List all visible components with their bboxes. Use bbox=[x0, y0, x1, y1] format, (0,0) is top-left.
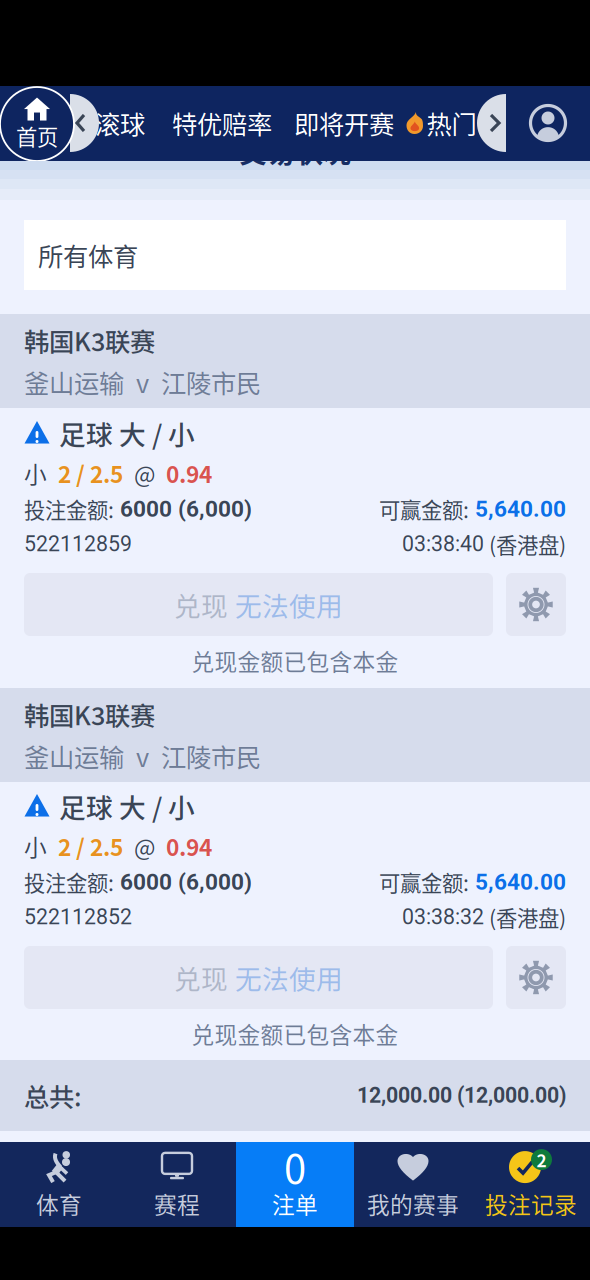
staticText: 可赢金额: bbox=[379, 494, 469, 524]
button[interactable]: 账户 bbox=[518, 86, 578, 160]
button[interactable]: 滚球 bbox=[90, 86, 150, 160]
button[interactable]: 体育 bbox=[0, 1142, 118, 1227]
staticText: 注单 bbox=[272, 1187, 318, 1220]
staticText: 所有体育 bbox=[38, 237, 138, 273]
staticText: 总共: bbox=[24, 1077, 82, 1114]
staticText: 韩国K3联赛 bbox=[24, 322, 155, 358]
staticText: 5,640.00 bbox=[469, 869, 566, 895]
staticText: 6000 (6,000) bbox=[114, 496, 252, 522]
button[interactable]: 首页 bbox=[0, 86, 75, 162]
staticText: (香港盘) bbox=[489, 529, 566, 559]
staticText: 足球 大 / 小 bbox=[59, 787, 195, 825]
staticText: 足球 大 / 小 bbox=[59, 414, 195, 452]
staticText: 5,640.00 bbox=[469, 496, 566, 522]
staticText: 热门 bbox=[426, 105, 476, 141]
staticText: 体育 bbox=[36, 1187, 82, 1220]
staticText: 6000 (6,000) bbox=[114, 869, 252, 895]
staticText: 2 bbox=[536, 1147, 546, 1172]
staticText: 兑现金额已包含本金 bbox=[191, 1017, 398, 1050]
staticText: 釜山运输 v 江陵市民 bbox=[24, 737, 261, 774]
button[interactable]: 0 bbox=[236, 1142, 354, 1227]
staticText: (香港盘) bbox=[489, 902, 566, 932]
staticText: 2 / 2.5 bbox=[58, 457, 123, 489]
button[interactable]: 赛程 bbox=[118, 1142, 236, 1227]
staticText: 投注金额: bbox=[24, 494, 114, 524]
button[interactable]: 我的赛事 bbox=[354, 1142, 472, 1227]
staticText: 小 bbox=[24, 457, 47, 489]
staticText: 釜山运输 v 江陵市民 bbox=[24, 363, 261, 400]
staticText: 03:38:32 bbox=[402, 904, 489, 929]
staticText: @ bbox=[134, 457, 155, 489]
staticText: 0 bbox=[284, 1137, 306, 1195]
staticText: 首页 bbox=[16, 121, 58, 151]
button[interactable]: 设置 bbox=[506, 946, 566, 1009]
button[interactable]: 特优赔率 bbox=[167, 86, 277, 160]
staticText: 03:38:40 bbox=[402, 531, 489, 556]
staticText: 522112852 bbox=[24, 904, 132, 929]
staticText: 0.94 bbox=[166, 830, 212, 862]
button[interactable]: 兑现 bbox=[24, 946, 493, 1009]
staticText: 我的赛事 bbox=[367, 1187, 459, 1220]
staticText: 无法使用 bbox=[235, 958, 343, 997]
staticText: 522112859 bbox=[24, 531, 132, 556]
staticText: 兑现 bbox=[174, 958, 228, 997]
staticText: 滚球 bbox=[95, 105, 145, 141]
staticText: 投注金额: bbox=[24, 867, 114, 897]
staticText: 赛程 bbox=[154, 1187, 200, 1220]
staticText: 0.94 bbox=[166, 457, 212, 489]
button[interactable]: 即将开赛 bbox=[289, 86, 399, 160]
staticText: 特优赔率 bbox=[172, 105, 272, 141]
button[interactable]: 2 bbox=[472, 1142, 590, 1227]
staticText: 投注记录 bbox=[485, 1187, 577, 1220]
staticText: 12,000.00 (12,000.00) bbox=[357, 1083, 566, 1108]
staticText: 即将开赛 bbox=[294, 105, 394, 141]
staticText: 小 bbox=[24, 830, 47, 862]
button[interactable]: 所有体育 bbox=[24, 220, 566, 290]
staticText: 韩国K3联赛 bbox=[24, 696, 155, 732]
staticText: 2 / 2.5 bbox=[58, 830, 123, 862]
button[interactable]: 兑现 bbox=[24, 573, 493, 636]
staticText: 交易状况 bbox=[239, 130, 351, 171]
button[interactable]: 设置 bbox=[506, 573, 566, 636]
button[interactable]: 热门 bbox=[396, 86, 486, 160]
staticText: 兑现 bbox=[174, 585, 228, 624]
staticText: @ bbox=[134, 830, 155, 862]
staticText: 兑现金额已包含本金 bbox=[191, 644, 398, 677]
staticText: 无法使用 bbox=[235, 585, 343, 624]
staticText: 可赢金额: bbox=[379, 867, 469, 897]
